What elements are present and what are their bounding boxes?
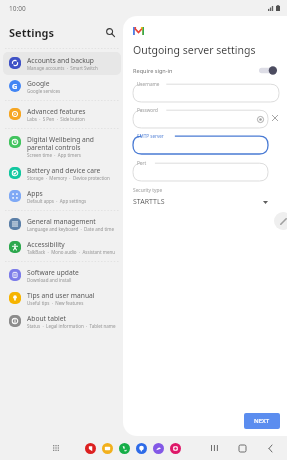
staticText: Accounts and backup [27,56,94,65]
staticText: Storage · Memory · Device protection [27,175,110,181]
staticText: NEXT [254,417,270,425]
button[interactable]: Samsung Notes [85,443,96,454]
staticText: About tablet [27,314,66,323]
staticText: General management [27,217,96,226]
button[interactable]: Recents [208,442,220,454]
button[interactable]: My Files [102,443,113,454]
button[interactable]: Back [264,442,276,454]
staticText: Screen time · App timers [27,152,81,158]
staticText: Accessibility [27,240,65,249]
staticText: Labs · S Pen · Side button [27,116,85,122]
staticText: Manage accounts · Smart Switch [27,65,98,71]
button[interactable]: SMTP server [133,133,268,154]
button[interactable]: Search [102,24,118,40]
button[interactable]: Clear password [268,111,281,124]
staticText: Google [27,79,50,88]
button[interactable]: G [3,75,121,98]
staticText: Advanced features [27,107,86,116]
button[interactable]: Require sign-in toggle [259,66,277,75]
staticText: Default apps · App settings [27,198,87,204]
button[interactable]: Edit [274,212,287,230]
button[interactable]: Digital Wellbeing and parental controls [3,131,121,162]
button[interactable]: Camera [170,443,181,454]
staticText: Security type [133,187,163,194]
button[interactable]: Advanced features [3,103,121,126]
staticText: Require sign-in [133,67,173,75]
staticText: SMTP server [137,133,164,139]
button[interactable]: Username [133,81,279,102]
staticText: Battery and device care [27,166,101,175]
button[interactable]: Home [236,442,248,454]
button[interactable]: Battery and device care [3,162,121,185]
button[interactable]: Require sign-in [133,66,281,75]
button[interactable]: All apps [50,442,62,454]
button[interactable]: Software update [3,264,121,287]
button[interactable]: STARTTLS [133,197,268,207]
button[interactable]: Apps [3,185,121,208]
staticText: Username [137,81,160,87]
staticText: Settings [9,25,55,40]
staticText: 10:00 [9,4,26,13]
staticText: Download and install [27,277,72,283]
button[interactable]: Tips and user manual [3,287,121,310]
staticText: Outgoing server settings [133,43,256,57]
staticText: Apps [27,189,43,198]
button[interactable]: Port [133,160,268,181]
button[interactable]: NEXT [244,413,280,429]
staticText: Status · Legal information · Tablet name [27,323,116,329]
button[interactable]: Accounts and backup [3,52,121,75]
staticText: Google services [27,88,61,94]
button[interactable]: Internet [153,443,164,454]
staticText: G [12,81,18,91]
button[interactable]: General management [3,213,121,236]
button[interactable]: Password [133,107,268,128]
button[interactable]: Accessibility [3,236,121,259]
staticText: TalkBack · Mono audio · Assistant menu [27,249,115,255]
staticText: Software update [27,268,79,277]
staticText: Tips and user manual [27,291,95,300]
staticText: Useful tips · New features [27,300,84,306]
staticText: Port [137,160,147,166]
staticText: Password [137,107,158,113]
staticText: Digital Wellbeing and parental controls [27,135,117,152]
button[interactable]: Messages [136,443,147,454]
staticText: STARTTLS [133,197,165,207]
button[interactable]: About tablet [3,310,121,333]
button[interactable]: Phone [119,443,130,454]
staticText: Language and keyboard · Date and time [27,226,114,232]
